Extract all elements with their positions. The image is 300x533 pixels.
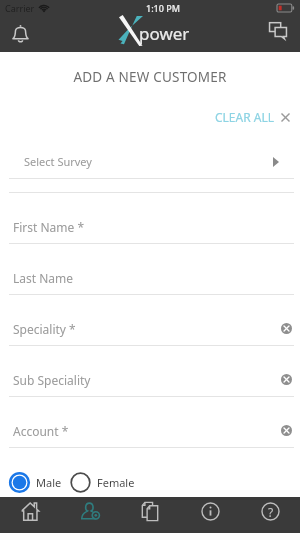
button[interactable]: Info xyxy=(180,497,240,533)
button[interactable]: Messages xyxy=(260,15,300,52)
staticText: First Name * xyxy=(13,219,85,235)
button[interactable]: Documents xyxy=(120,497,180,533)
button[interactable]: CLEAR ALL xyxy=(209,105,300,129)
button[interactable]: Male xyxy=(9,472,62,493)
button[interactable]: Last Name xyxy=(0,244,300,295)
staticText: Female xyxy=(97,475,135,490)
button[interactable]: Speciality * xyxy=(0,295,300,346)
button[interactable]: Add customer xyxy=(60,497,120,533)
button[interactable]: Notifications xyxy=(0,15,40,52)
button[interactable]: Help xyxy=(240,497,300,533)
button[interactable]: Home xyxy=(0,497,60,533)
staticText: Account * xyxy=(13,423,69,439)
staticText: CLEAR ALL xyxy=(215,109,275,125)
button[interactable]: First Name * xyxy=(0,193,300,244)
button[interactable]: Select Survey xyxy=(0,145,300,193)
staticText: Carrier xyxy=(5,2,35,14)
staticText: Male xyxy=(36,475,62,490)
staticText: Sub Speciality xyxy=(13,372,91,388)
button[interactable]: Sub Speciality xyxy=(0,346,300,397)
staticText: Speciality * xyxy=(13,321,76,337)
button[interactable]: Female xyxy=(70,472,135,493)
staticText: 1:10 PM xyxy=(146,2,180,14)
staticText: ADD A NEW CUSTOMER xyxy=(73,68,227,86)
staticText: power xyxy=(139,22,190,45)
staticText: Select Survey xyxy=(24,154,92,169)
staticText: ? xyxy=(268,504,274,520)
button[interactable]: Account * xyxy=(0,397,300,448)
staticText: Last Name xyxy=(13,270,74,286)
